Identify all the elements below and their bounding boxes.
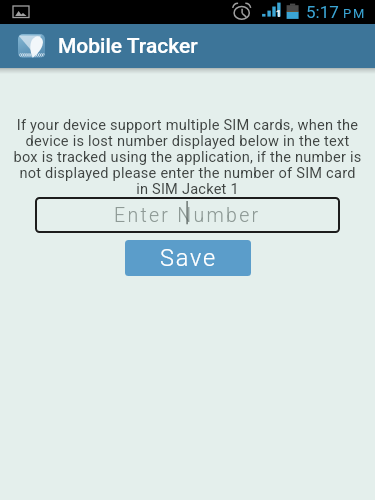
staticText: Mobile Tracker [58, 34, 198, 59]
staticText: Save [160, 244, 217, 272]
button[interactable]: Save [125, 240, 251, 276]
staticText: Enter Number [114, 204, 261, 227]
staticText: PM [343, 6, 367, 21]
staticText: If your device support multiple SIM card… [12, 116, 363, 197]
button[interactable]: Enter Number input field [35, 197, 340, 233]
staticText: 5:17 [306, 2, 339, 22]
button[interactable]: Mobile Tracker home [18, 34, 45, 58]
staticText: 1 [276, 9, 282, 20]
